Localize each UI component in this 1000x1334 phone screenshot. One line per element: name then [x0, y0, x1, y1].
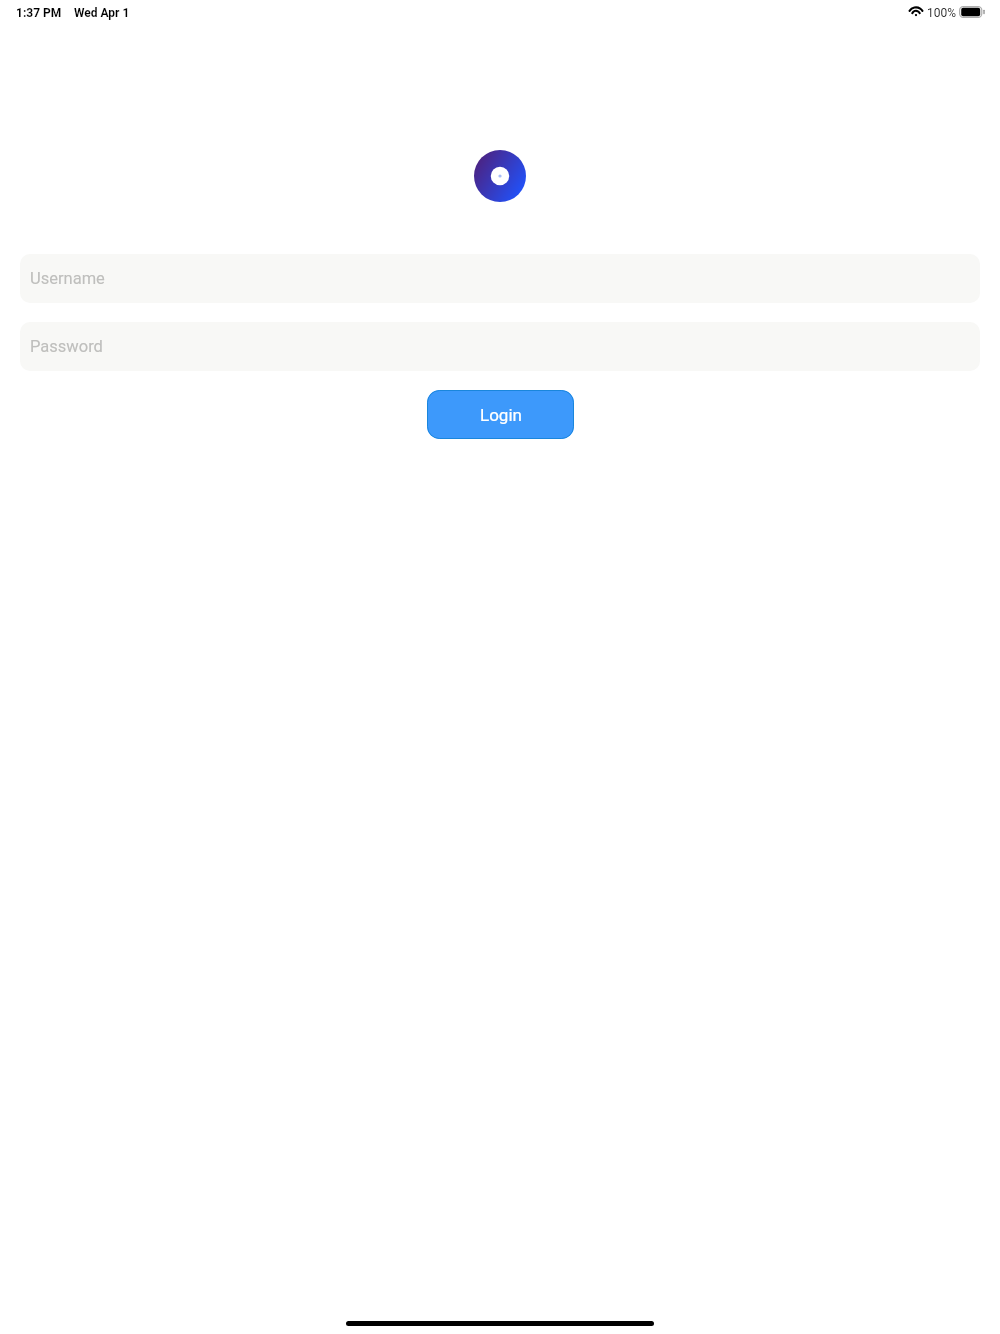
other: Wi-Fi — [909, 6, 923, 18]
staticText: 1:37 PM — [16, 6, 62, 20]
staticText: 100% — [927, 6, 957, 20]
staticText: Wed Apr 1 — [74, 6, 130, 20]
other: Battery full — [959, 6, 985, 18]
button[interactable]: Login — [427, 390, 574, 439]
button[interactable]: Username — [20, 254, 980, 303]
button[interactable]: Password — [20, 322, 980, 371]
staticText: Username — [30, 269, 105, 288]
staticText: Login — [480, 405, 522, 425]
staticText: Password — [30, 337, 103, 356]
